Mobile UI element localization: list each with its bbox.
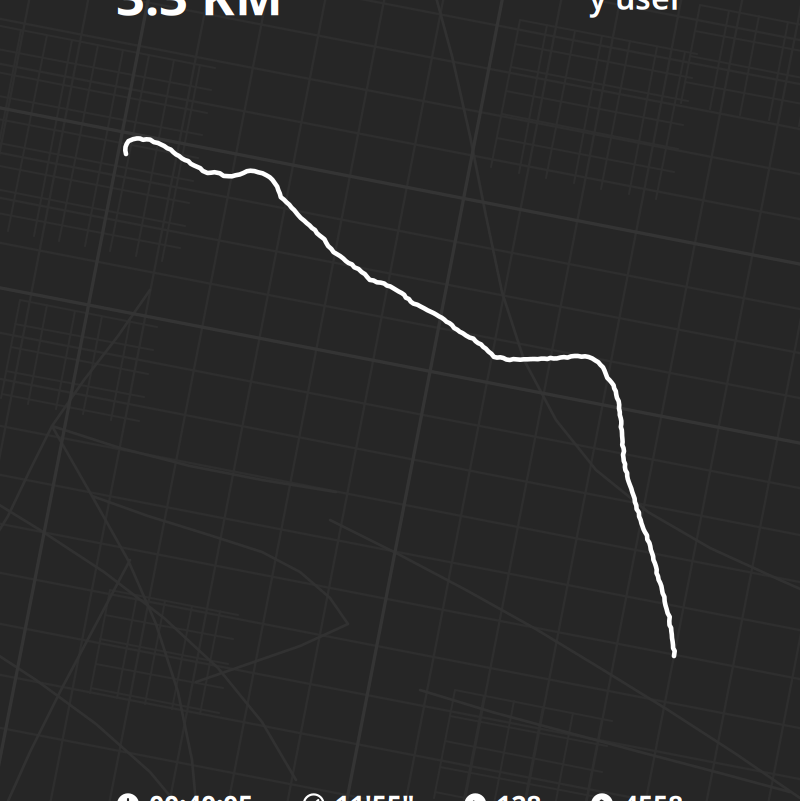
button[interactable]: Average heart rate — [464, 787, 541, 801]
staticText: 3.3 KM — [116, 0, 283, 29]
button[interactable]: Average pace — [303, 787, 415, 801]
staticText: 11'55" — [335, 787, 415, 801]
button[interactable]: Duration — [117, 787, 253, 801]
staticText: 00:40:05 — [149, 787, 253, 801]
staticText: y user — [589, 0, 684, 18]
staticText: 128 — [496, 787, 541, 801]
staticText: 4558 — [623, 787, 683, 801]
button[interactable]: Steps — [591, 787, 683, 801]
